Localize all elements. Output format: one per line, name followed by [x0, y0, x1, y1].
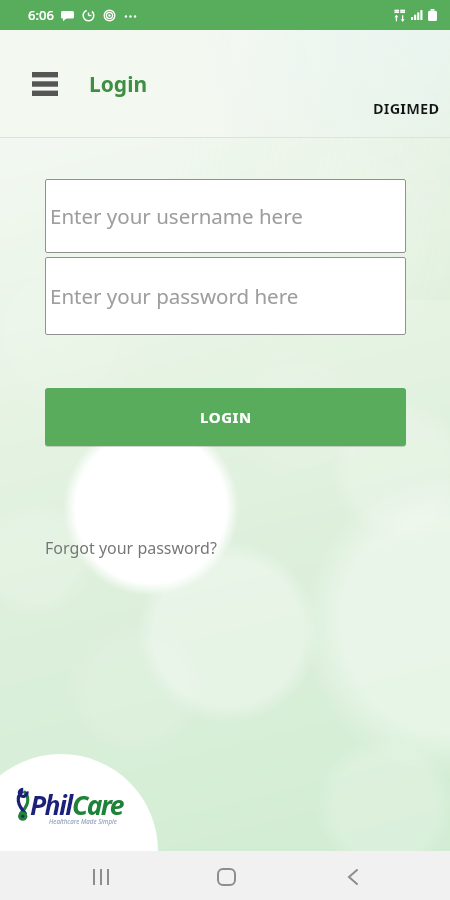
button[interactable]: Menu: [26, 65, 64, 103]
staticText: Phil: [30, 787, 72, 823]
button[interactable]: Enter your username here: [45, 179, 406, 253]
button[interactable]: Back: [329, 853, 377, 900]
button[interactable]: Enter your password here: [45, 257, 406, 335]
staticText: DIGIMED: [373, 98, 440, 118]
button[interactable]: Forgot your password?: [45, 537, 217, 559]
staticText: Forgot your password?: [45, 537, 217, 559]
staticText: LOGIN: [200, 407, 252, 427]
staticText: Care: [72, 787, 123, 823]
button[interactable]: LOGIN: [45, 388, 406, 446]
staticText: Healthcare Made Simple: [49, 817, 117, 825]
staticText: Login: [89, 70, 148, 99]
button[interactable]: Recent apps: [77, 853, 125, 900]
staticText: Enter your username here: [50, 202, 303, 230]
staticText: Enter your password here: [50, 282, 299, 310]
staticText: 6:06: [28, 6, 54, 24]
button[interactable]: Home: [202, 853, 250, 900]
